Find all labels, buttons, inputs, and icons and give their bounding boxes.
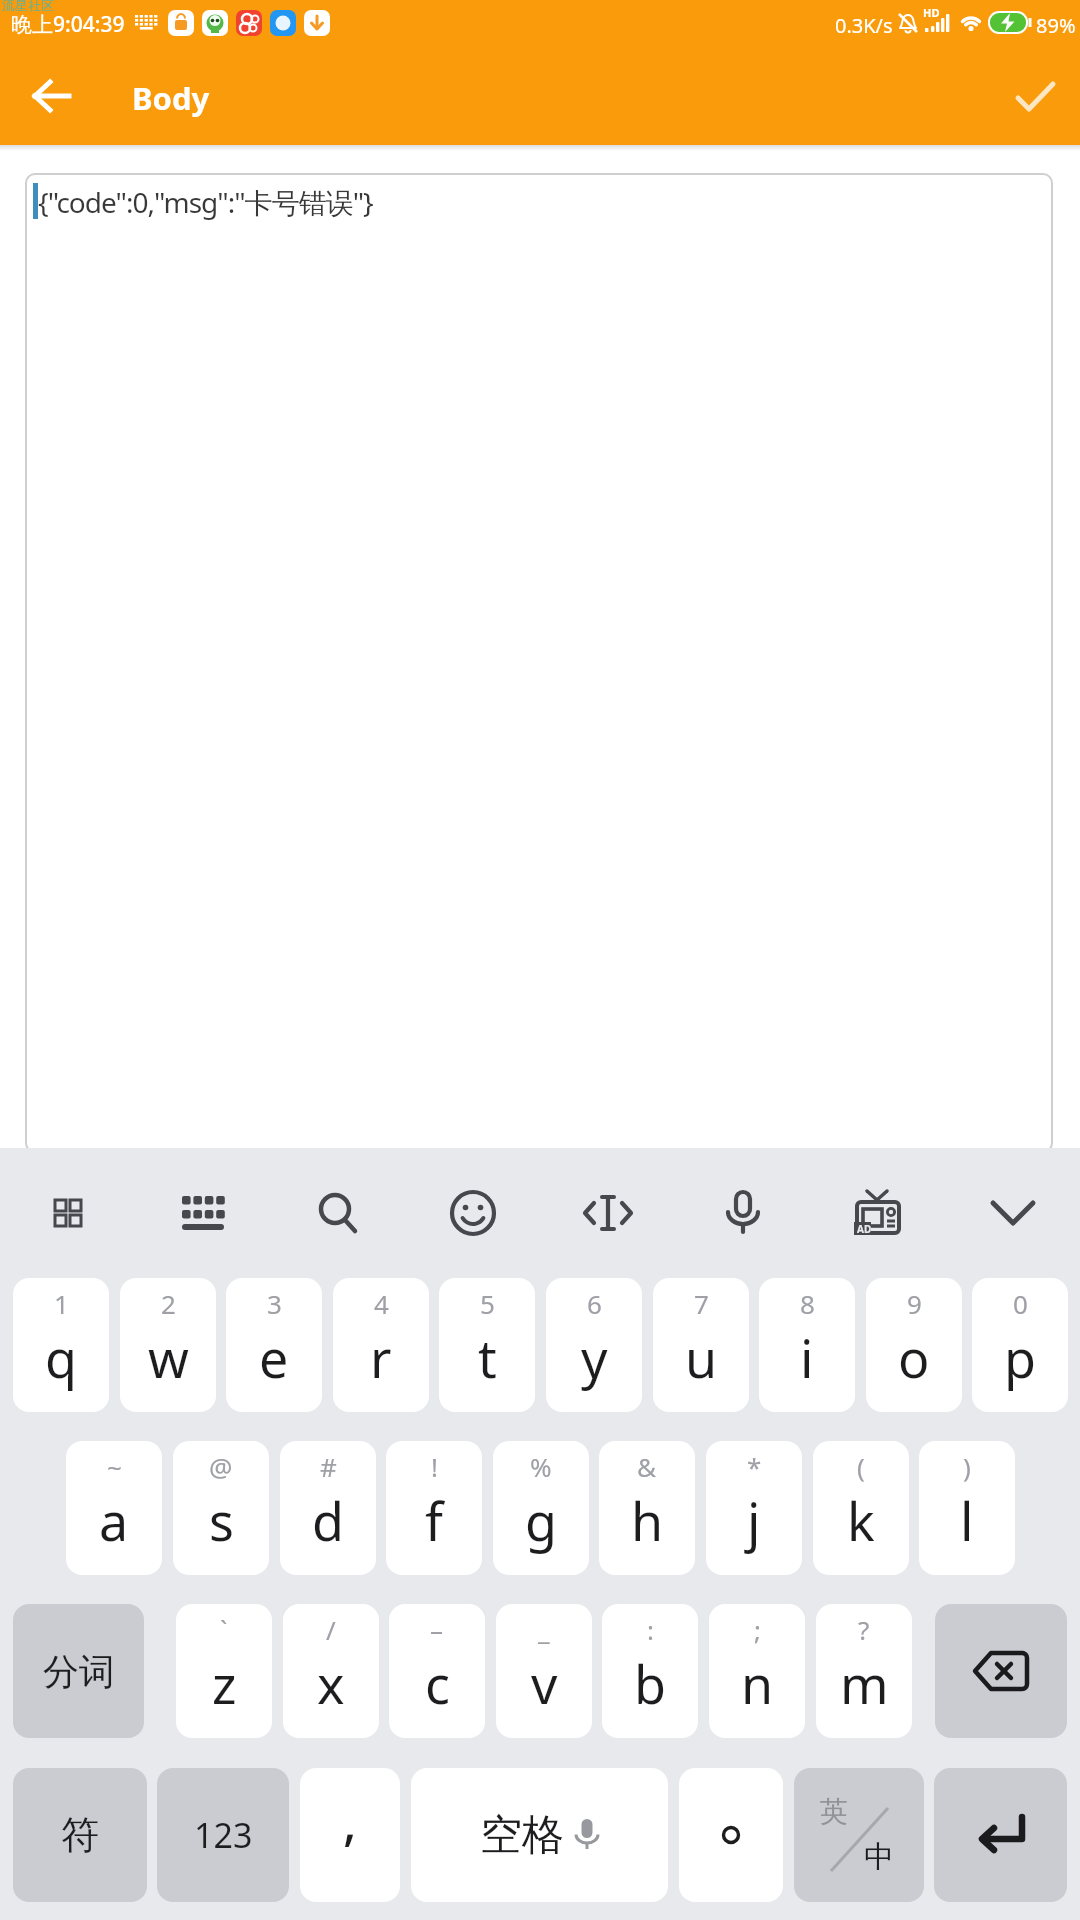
staticText: g xyxy=(525,1485,557,1556)
button[interactable]: & xyxy=(599,1441,695,1575)
button[interactable] xyxy=(0,1148,135,1278)
staticText: f xyxy=(425,1485,443,1556)
button[interactable]: _ xyxy=(496,1604,592,1738)
button[interactable]: 1 xyxy=(13,1278,109,1412)
staticText: , xyxy=(343,1787,357,1855)
button[interactable]: 2 xyxy=(120,1278,216,1412)
button[interactable]: ( xyxy=(813,1441,909,1575)
button[interactable]: 8 xyxy=(759,1278,855,1412)
staticText: ( xyxy=(857,1449,865,1484)
staticText: ! xyxy=(431,1449,438,1484)
button[interactable]: 4 xyxy=(333,1278,429,1412)
staticText: @ xyxy=(209,1449,233,1484)
staticText: c xyxy=(425,1648,450,1719)
button[interactable]: : xyxy=(602,1604,698,1738)
staticText: x xyxy=(317,1648,345,1719)
staticText: 3 xyxy=(267,1286,282,1321)
staticText: 0.3K/s xyxy=(835,12,893,39)
staticText: 晚上9:04:39 xyxy=(11,10,125,39)
staticText: o xyxy=(898,1322,930,1393)
button[interactable]: ~ xyxy=(66,1441,162,1575)
staticText: m xyxy=(840,1648,889,1719)
button[interactable] xyxy=(540,1148,675,1278)
staticText: u xyxy=(685,1322,718,1393)
staticText: 符 xyxy=(61,1811,99,1859)
button[interactable]: # xyxy=(280,1441,376,1575)
staticText: a xyxy=(99,1485,129,1556)
staticText: k xyxy=(847,1485,875,1556)
staticText: z xyxy=(212,1648,237,1719)
button[interactable] xyxy=(675,1148,810,1278)
staticText: ` xyxy=(220,1612,228,1647)
button[interactable] xyxy=(934,1768,1067,1902)
button[interactable]: / xyxy=(283,1604,379,1738)
staticText: ? xyxy=(858,1612,870,1647)
staticText: % xyxy=(530,1449,552,1484)
button[interactable]: ; xyxy=(709,1604,805,1738)
staticText: 4 xyxy=(374,1286,389,1321)
staticText: – xyxy=(430,1612,444,1647)
staticText: y xyxy=(581,1322,608,1393)
button[interactable]: ) xyxy=(919,1441,1015,1575)
staticText: 2 xyxy=(161,1286,176,1321)
staticText: 英 xyxy=(820,1794,848,1829)
staticText: 空格 xyxy=(480,1809,564,1862)
staticText: ; xyxy=(754,1612,761,1647)
button[interactable]: 9 xyxy=(866,1278,962,1412)
staticText: d xyxy=(312,1485,344,1556)
staticText: l xyxy=(960,1485,974,1556)
staticText: : xyxy=(647,1612,654,1647)
button[interactable]: 3 xyxy=(226,1278,322,1412)
staticText: / xyxy=(326,1612,336,1647)
button[interactable]: 符 xyxy=(13,1768,147,1902)
staticText: 中 xyxy=(864,1838,894,1876)
staticText: _ xyxy=(538,1612,550,1647)
button[interactable]: 英 xyxy=(794,1768,924,1902)
staticText: ) xyxy=(963,1449,971,1484)
staticText: AD xyxy=(857,1222,872,1236)
button[interactable]: 123 xyxy=(157,1768,289,1902)
button[interactable]: % xyxy=(493,1441,589,1575)
button[interactable]: * xyxy=(706,1441,802,1575)
button[interactable]: – xyxy=(389,1604,485,1738)
button[interactable]: , xyxy=(300,1768,400,1902)
button[interactable] xyxy=(18,78,86,114)
button[interactable]: 0 xyxy=(972,1278,1068,1412)
staticText: 流星社区 xyxy=(2,0,54,13)
staticText: j xyxy=(747,1485,761,1556)
button[interactable] xyxy=(405,1148,540,1278)
button[interactable]: @ xyxy=(173,1441,269,1575)
button[interactable] xyxy=(270,1148,405,1278)
staticText: 6 xyxy=(587,1286,602,1321)
button[interactable]: ! xyxy=(386,1441,482,1575)
staticText: n xyxy=(741,1648,774,1719)
staticText: 5 xyxy=(480,1286,495,1321)
button[interactable]: AD xyxy=(810,1148,945,1278)
staticText: t xyxy=(478,1322,497,1393)
button[interactable]: 6 xyxy=(546,1278,642,1412)
button[interactable] xyxy=(1004,74,1068,120)
button[interactable] xyxy=(679,1768,783,1902)
button[interactable] xyxy=(945,1148,1080,1278)
button[interactable]: 空格 xyxy=(411,1768,668,1902)
button[interactable] xyxy=(935,1604,1067,1738)
button[interactable]: ` xyxy=(176,1604,272,1738)
staticText: b xyxy=(634,1648,666,1719)
staticText: s xyxy=(209,1485,234,1556)
button[interactable] xyxy=(135,1148,270,1278)
staticText: * xyxy=(747,1449,762,1484)
staticText: 1 xyxy=(54,1286,69,1321)
staticText: 123 xyxy=(194,1812,253,1858)
staticText: w xyxy=(148,1322,189,1393)
button[interactable]: 5 xyxy=(439,1278,535,1412)
staticText: r xyxy=(370,1322,392,1393)
button[interactable]: {"code":0,"msg":"卡号错误"} xyxy=(25,173,1053,1153)
staticText: HD xyxy=(923,5,940,20)
button[interactable]: ? xyxy=(816,1604,912,1738)
staticText: 8 xyxy=(800,1286,815,1321)
staticText: ~ xyxy=(107,1449,122,1484)
button[interactable]: 分词 xyxy=(13,1604,144,1738)
staticText: Body xyxy=(132,77,210,119)
staticText: v xyxy=(531,1648,558,1719)
button[interactable]: 7 xyxy=(653,1278,749,1412)
